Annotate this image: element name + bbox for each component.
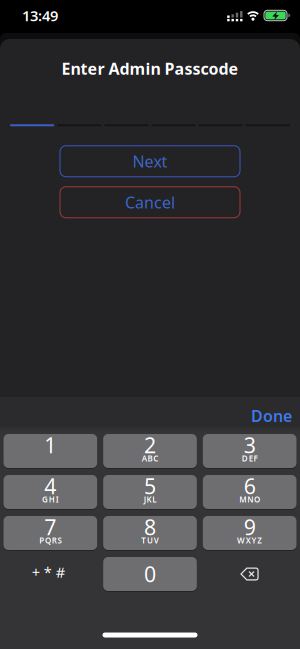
staticText: 4 — [44, 472, 56, 500]
button[interactable]: 2 — [103, 434, 197, 468]
staticText: ABC — [142, 453, 158, 464]
button[interactable]: 9 — [203, 516, 296, 550]
staticText: 13:49 — [22, 6, 58, 25]
staticText: GHI — [42, 494, 59, 505]
button[interactable]: Done — [251, 405, 300, 426]
button[interactable]: Cancel — [59, 186, 240, 218]
staticText: + * # — [32, 562, 65, 582]
button[interactable]: 7 — [3, 516, 97, 550]
staticText: 5 — [144, 472, 156, 500]
staticText: MNO — [239, 494, 260, 505]
staticText: 8 — [144, 513, 156, 541]
staticText: 3 — [244, 431, 256, 459]
staticText: 7 — [44, 513, 56, 541]
button[interactable]: 3 — [203, 434, 296, 468]
button[interactable]: Next — [59, 145, 240, 177]
button[interactable]: 8 — [103, 516, 197, 550]
staticText: 2 — [144, 431, 156, 459]
button[interactable]: 6 — [203, 475, 296, 509]
staticText: 0 — [144, 560, 156, 588]
staticText: Next — [132, 151, 167, 172]
staticText: 6 — [244, 472, 256, 500]
staticText: PQRS — [39, 535, 61, 546]
staticText: DEF — [242, 453, 257, 464]
staticText: JKL — [144, 494, 156, 505]
staticText: TUV — [141, 535, 159, 546]
staticText: Enter Admin Passcode — [61, 58, 238, 79]
staticText: WXYZ — [237, 535, 262, 546]
staticText: 9 — [244, 513, 256, 541]
button[interactable]: 0 — [103, 557, 197, 591]
staticText: 1 — [44, 431, 56, 459]
button[interactable]: Symbols — [3, 557, 97, 591]
button[interactable]: 1 — [3, 434, 97, 468]
staticText: Done — [251, 405, 292, 426]
staticText: Cancel — [125, 192, 175, 213]
button[interactable]: 5 — [103, 475, 197, 509]
button[interactable]: 4 — [3, 475, 97, 509]
button[interactable]: Delete — [203, 557, 296, 591]
